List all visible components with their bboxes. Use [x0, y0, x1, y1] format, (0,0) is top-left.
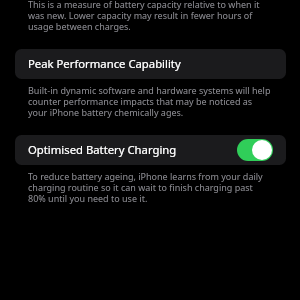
staticText: This is a measure of battery capacity re…: [28, 0, 272, 33]
button[interactable]: Optimised Battery Charging, on: [237, 139, 273, 161]
staticText: Optimised Battery Charging: [28, 142, 177, 157]
button[interactable]: Optimised Battery Charging: [15, 135, 286, 165]
button[interactable]: Peak Performance Capability: [15, 49, 286, 79]
staticText: To reduce battery ageing, iPhone learns …: [28, 170, 272, 205]
staticText: Peak Performance Capability: [28, 56, 181, 71]
staticText: Built-in dynamic software and hardware s…: [28, 84, 272, 119]
